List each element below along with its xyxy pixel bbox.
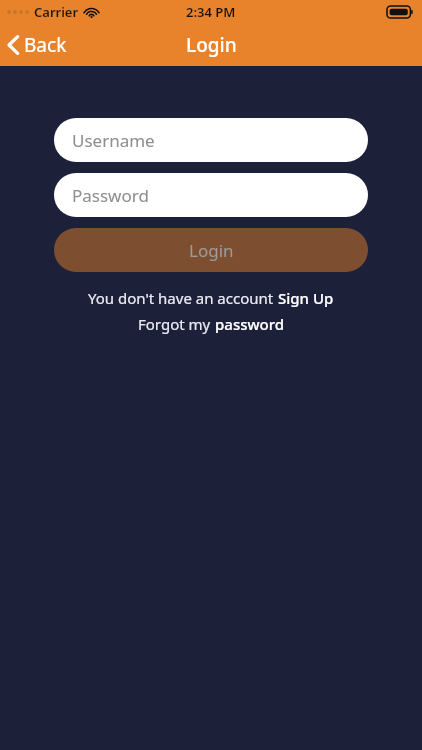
staticText: Sign Up	[278, 288, 334, 308]
button[interactable]: Back	[0, 28, 77, 62]
button[interactable]: password	[215, 314, 285, 334]
staticText: Login	[189, 239, 234, 262]
staticText: 2:34 PM	[186, 3, 236, 21]
staticText: Username	[72, 129, 155, 152]
staticText: Carrier	[34, 3, 79, 21]
button[interactable]: Sign Up	[278, 288, 334, 308]
button[interactable]: Username	[54, 118, 368, 162]
staticText: password	[215, 314, 285, 334]
staticText: Login	[186, 32, 237, 58]
staticText: Forgot my	[138, 314, 215, 334]
button[interactable]: Login	[54, 228, 368, 272]
staticText: You don't have an account	[88, 288, 278, 308]
button[interactable]: Password	[54, 173, 368, 217]
staticText: Back	[24, 32, 67, 58]
staticText: Password	[72, 184, 149, 207]
